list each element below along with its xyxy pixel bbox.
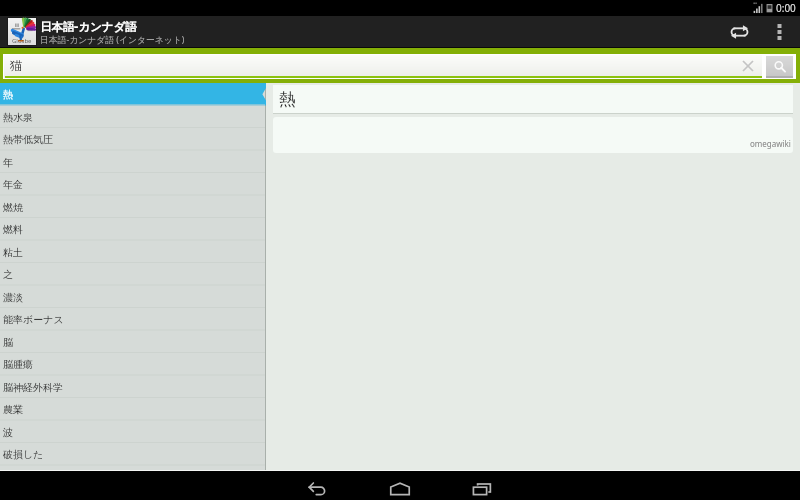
staticText: 熱 xyxy=(3,88,13,101)
button[interactable]: 脳神経外科学 xyxy=(0,376,266,399)
button[interactable]: 脳腫瘍 xyxy=(0,353,266,376)
staticText: 濃淡 xyxy=(3,291,23,304)
button[interactable]: 熱水泉 xyxy=(0,106,266,129)
staticText: 日本語-カンナダ語 (インターネット) xyxy=(40,34,185,46)
button[interactable]: Recent apps xyxy=(441,471,523,500)
button[interactable]: Back xyxy=(277,471,359,500)
staticText: 脳 xyxy=(3,336,13,349)
button[interactable]: 熱帯低気圧 xyxy=(0,128,266,151)
button[interactable]: 燃料 xyxy=(0,218,266,241)
staticText: 粘土 xyxy=(3,246,23,259)
button[interactable]: 粘土 xyxy=(0,241,266,264)
staticText: 波 xyxy=(3,426,13,439)
staticText: 之 xyxy=(3,268,13,281)
staticText: 熱 xyxy=(279,89,296,110)
button[interactable]: 能率ボーナス xyxy=(0,308,266,331)
staticText: 猫 xyxy=(10,58,23,74)
button[interactable]: 脳 xyxy=(0,331,266,354)
staticText: 能率ボーナス xyxy=(3,313,64,326)
staticText: 年 xyxy=(3,156,13,169)
button[interactable]: Swap languages xyxy=(715,16,763,47)
staticText: 年金 xyxy=(3,178,23,191)
button[interactable]: 破損した xyxy=(0,443,266,466)
button[interactable]: 農業 xyxy=(0,398,266,421)
staticText: 熱水泉 xyxy=(3,111,33,124)
button[interactable]: 燃焼 xyxy=(0,196,266,219)
button[interactable]: 熱 xyxy=(0,83,266,106)
button[interactable]: 濃淡 xyxy=(0,286,266,309)
button[interactable]: Clear query xyxy=(740,58,756,74)
staticText: 熱帯低気圧 xyxy=(3,133,53,146)
button[interactable]: 猫 xyxy=(4,55,762,78)
staticText: 農業 xyxy=(3,403,23,416)
staticText: 0:00 xyxy=(776,1,796,15)
staticText: 脳腫瘍 xyxy=(3,358,33,371)
staticText: Glosbe xyxy=(12,37,32,45)
button[interactable]: 年金 xyxy=(0,173,266,196)
staticText: 脳神経外科学 xyxy=(3,381,63,394)
staticText: 燃焼 xyxy=(3,201,23,214)
button[interactable]: Home xyxy=(359,471,441,500)
button[interactable]: 波 xyxy=(0,421,266,444)
staticText: 破損した xyxy=(3,448,44,461)
button[interactable]: 之 xyxy=(0,263,266,286)
button[interactable]: More options xyxy=(763,16,795,47)
button[interactable]: Search xyxy=(766,56,793,78)
staticText: 燃料 xyxy=(3,223,23,236)
staticText: 日本語-カンナダ語 xyxy=(40,19,137,35)
staticText: omegawiki xyxy=(750,138,791,149)
button[interactable] xyxy=(0,466,266,489)
button[interactable]: 年 xyxy=(0,151,266,174)
